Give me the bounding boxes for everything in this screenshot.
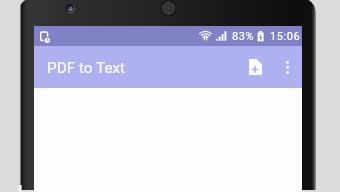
staticText: PDF to Text — [47, 59, 126, 77]
button[interactable]: New document — [242, 54, 268, 80]
button[interactable]: More options — [274, 54, 300, 80]
staticText: 83% — [232, 30, 255, 43]
staticText: 15:06 — [270, 30, 301, 43]
